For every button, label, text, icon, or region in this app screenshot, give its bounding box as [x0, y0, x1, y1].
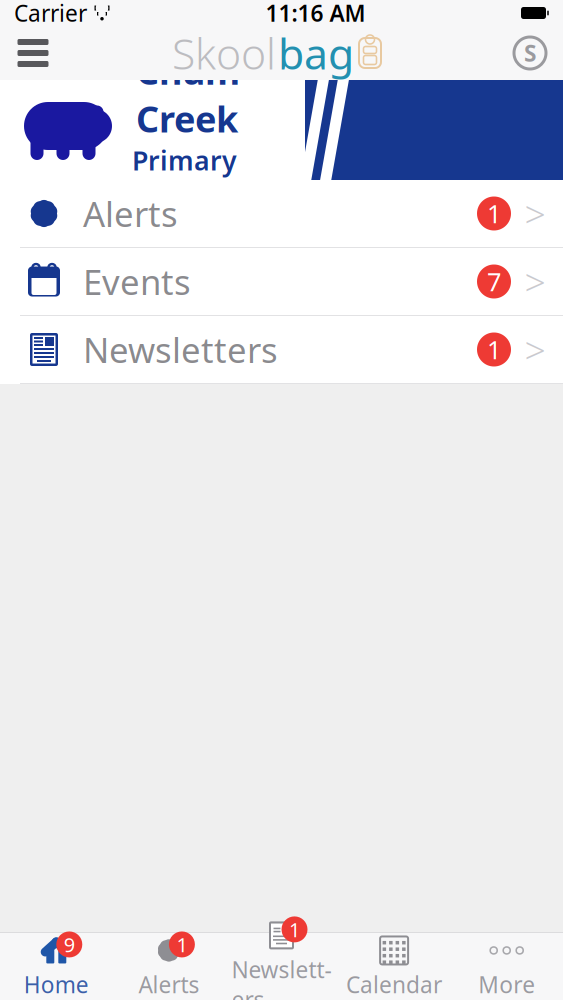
staticText: Alerts [138, 969, 199, 999]
staticText: Newsletters [83, 326, 278, 372]
button[interactable]: Calendar [338, 933, 450, 1000]
staticText: 1 [176, 931, 187, 958]
staticText: Home [24, 969, 89, 999]
staticText: 11:16 AM [265, 0, 365, 28]
button[interactable]: Menu [6, 31, 60, 75]
button[interactable]: 1 [113, 933, 225, 1000]
staticText: S [524, 38, 536, 68]
staticText: Primary School [132, 142, 244, 213]
staticText: Chum Creek [136, 47, 240, 142]
button[interactable]: Refresh [503, 31, 557, 75]
staticText: bag [278, 25, 354, 81]
staticText: More [478, 969, 535, 999]
button[interactable]: Alerts [0, 180, 563, 247]
staticText: 7 [487, 265, 501, 298]
staticText: Newsletters [231, 954, 331, 1000]
staticText: Carrier [14, 0, 87, 28]
button[interactable]: 1 [225, 933, 338, 1000]
button[interactable]: More [450, 933, 563, 1000]
staticText: Events [83, 258, 191, 304]
button[interactable]: 9 [0, 933, 113, 1000]
staticText: Alerts [83, 190, 178, 236]
staticText: Skool [172, 25, 276, 81]
staticText: 9 [64, 931, 75, 958]
button[interactable]: Newsletters [0, 315, 563, 383]
staticText: 1 [487, 197, 501, 230]
staticText: 1 [487, 333, 501, 366]
staticText: Calendar [346, 969, 442, 999]
button[interactable]: Events [0, 247, 563, 315]
staticText: 1 [289, 916, 300, 943]
staticText: > [524, 189, 545, 238]
staticText: > [524, 325, 545, 374]
staticText: > [524, 257, 545, 306]
